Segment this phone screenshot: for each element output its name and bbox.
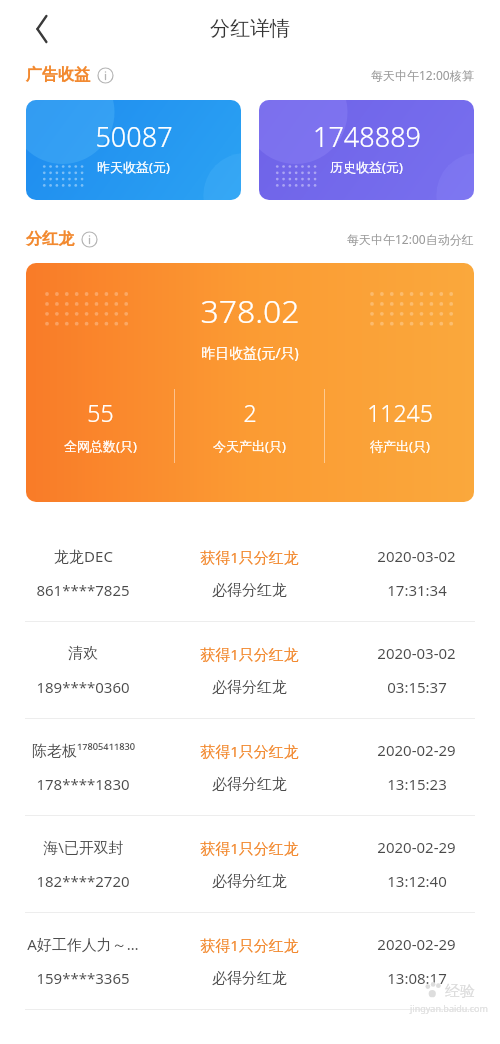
staticText: 189****0360 — [36, 677, 130, 697]
button[interactable]: 50087 — [26, 100, 241, 200]
staticText: 待产出(只) — [370, 437, 430, 455]
staticText: 海\已开双封 — [43, 837, 124, 857]
staticText: A好工作人力～… — [27, 934, 139, 954]
button[interactable]: A好工作人力～… — [0, 913, 500, 1009]
staticText: 获得1只分红龙 — [200, 741, 299, 761]
staticText: 13:15:23 — [387, 774, 447, 794]
staticText: 2020-02-29 — [377, 934, 456, 954]
staticText: 55 — [87, 397, 114, 428]
staticText: 分红龙 — [26, 229, 74, 249]
staticText: 378.02 — [26, 289, 474, 333]
staticText: 龙龙DEC — [54, 546, 113, 566]
button[interactable]: 广告收益 — [26, 65, 114, 85]
staticText: 获得1只分红龙 — [200, 547, 299, 567]
button[interactable]: 清欢 — [0, 622, 500, 718]
button[interactable]: 1748889 — [259, 100, 474, 200]
staticText: 2 — [243, 397, 257, 428]
staticText: jingyan.baidu.com — [410, 1002, 488, 1014]
staticText: 13:08:17 — [387, 968, 447, 988]
staticText: 每天中午12:00核算 — [371, 67, 474, 83]
staticText: 必得分红龙 — [212, 775, 287, 794]
staticText: 11245 — [367, 397, 433, 428]
staticText: 2020-02-29 — [377, 837, 456, 857]
staticText: 陈老板¹⁷⁸⁰⁵⁴¹¹⁸³⁰ — [32, 740, 135, 760]
button[interactable]: 龙龙DEC — [0, 525, 500, 621]
staticText: 159****3365 — [36, 968, 130, 988]
staticText: 广告收益 — [26, 65, 90, 85]
staticText: 昨日收益(元/只) — [26, 343, 474, 362]
button[interactable]: 陈老板¹⁷⁸⁰⁵⁴¹¹⁸³⁰ — [0, 719, 500, 815]
staticText: 获得1只分红龙 — [200, 838, 299, 858]
button[interactable]: 378.02 — [26, 263, 474, 502]
staticText: 2020-03-02 — [377, 546, 456, 566]
staticText: 经验 — [445, 982, 475, 1001]
staticText: 13:12:40 — [387, 871, 447, 891]
staticText: 1748889 — [313, 118, 421, 155]
staticText: 今天产出(只) — [213, 437, 286, 455]
staticText: 清欢 — [68, 644, 98, 663]
staticText: 必得分红龙 — [212, 678, 287, 697]
staticText: 全网总数(只) — [64, 437, 137, 455]
staticText: 必得分红龙 — [212, 969, 287, 988]
staticText: 182****2720 — [36, 871, 130, 891]
staticText: 每天中午12:00自动分红 — [347, 231, 474, 247]
staticText: 17:31:34 — [387, 580, 447, 600]
staticText: 必得分红龙 — [212, 581, 287, 600]
staticText: 50087 — [95, 118, 173, 155]
staticText: 必得分红龙 — [212, 872, 287, 891]
staticText: 861****7825 — [36, 580, 130, 600]
staticText: 获得1只分红龙 — [200, 935, 299, 955]
staticText: 178****1830 — [36, 774, 130, 794]
staticText: 昨天收益(元) — [97, 158, 170, 176]
button[interactable]: 分红龙 — [26, 229, 98, 249]
button[interactable]: 海\已开双封 — [0, 816, 500, 912]
staticText: 分红详情 — [210, 16, 290, 41]
staticText: 2020-03-02 — [377, 643, 456, 663]
button[interactable]: Back — [18, 6, 64, 52]
staticText: 03:15:37 — [387, 677, 447, 697]
staticText: 2020-02-29 — [377, 740, 456, 760]
staticText: 历史收益(元) — [330, 158, 403, 176]
staticText: 获得1只分红龙 — [200, 644, 299, 664]
